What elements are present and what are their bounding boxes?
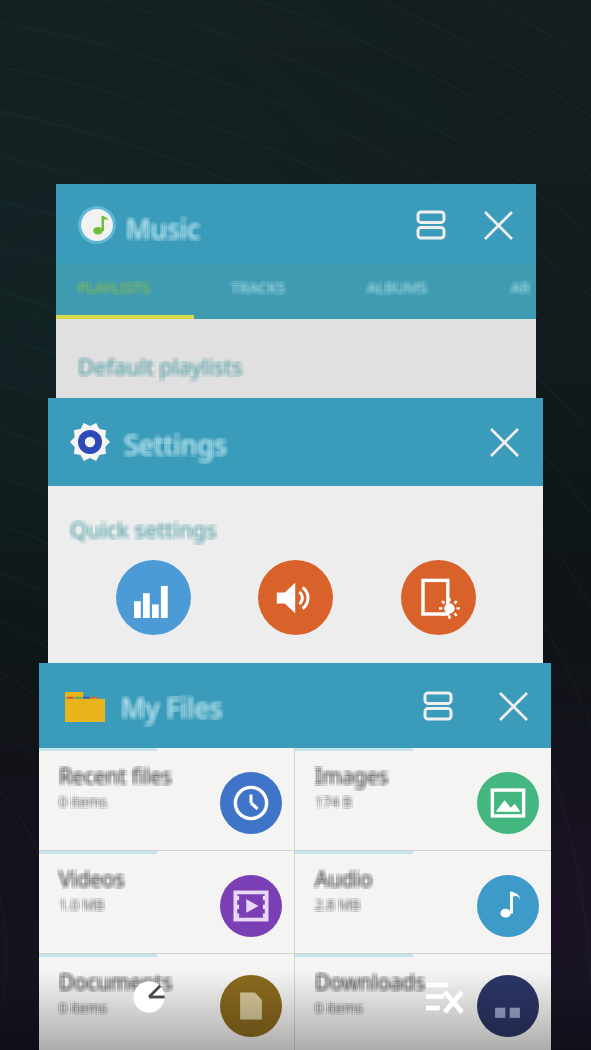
staticText: Downloads	[315, 970, 425, 999]
staticText: 1.0 MB	[59, 895, 105, 914]
staticText: ALBUMS	[367, 279, 428, 299]
staticText: 0 items	[315, 998, 364, 1017]
staticText: 174 B	[317, 792, 354, 811]
staticText: Videos	[61, 863, 127, 892]
staticText: Downloads	[317, 968, 427, 997]
staticText: Default playlists	[78, 353, 243, 383]
staticText: 0 items	[61, 792, 110, 811]
staticText: My Files	[121, 689, 223, 726]
staticText: 2.8 MB	[313, 895, 359, 914]
staticText: Quick settings	[72, 516, 219, 546]
staticText: 174 B	[315, 792, 352, 811]
staticText: 0 items	[313, 1000, 362, 1019]
staticText: Videos	[57, 863, 123, 892]
staticText: Downloads	[317, 966, 427, 995]
staticText: Music	[124, 212, 199, 249]
button[interactable]: Downloads	[295, 954, 551, 1050]
staticText: PLAYLISTS	[76, 277, 148, 297]
staticText: 0 items	[57, 998, 106, 1017]
button[interactable]: Quick setting	[116, 560, 191, 635]
staticText: 1.0 MB	[57, 893, 103, 912]
button[interactable]: Audio	[295, 851, 551, 953]
staticText: Images	[313, 764, 387, 793]
button[interactable]: Videos	[39, 851, 294, 953]
staticText: ALBUMS	[367, 275, 428, 295]
staticText: Documents	[57, 970, 171, 999]
staticText: Audio	[313, 867, 371, 896]
staticText: 2.8 MB	[315, 893, 361, 912]
staticText: Music	[128, 208, 203, 245]
button[interactable]: Images	[295, 748, 551, 850]
staticText: Videos	[61, 867, 127, 896]
staticText: Images	[313, 760, 387, 789]
staticText: Settings	[126, 426, 229, 463]
staticText: PLAYLISTS	[80, 279, 152, 299]
staticText: Documents	[61, 968, 175, 997]
staticText: Settings	[122, 424, 225, 461]
staticText: TRACKS	[233, 275, 287, 295]
staticText: TRACKS	[233, 279, 287, 299]
staticText: Downloads	[313, 966, 423, 995]
staticText: Audio	[317, 867, 375, 896]
staticText: Recent files	[59, 762, 172, 791]
staticText: 0 items	[317, 998, 366, 1017]
button[interactable]: Close Settings	[485, 423, 523, 461]
button[interactable]: Close all	[411, 964, 477, 1030]
staticText: 174 B	[313, 794, 350, 813]
button[interactable]: Quick setting	[258, 560, 333, 635]
staticText: PLAYLISTS	[76, 279, 148, 299]
staticText: 0 items	[313, 998, 362, 1017]
button[interactable]: Recent files	[39, 748, 294, 850]
staticText: AR	[513, 275, 532, 295]
staticText: Audio	[315, 863, 373, 892]
staticText: Images	[317, 760, 391, 789]
staticText: Recent files	[61, 762, 174, 791]
staticText: Recent files	[59, 760, 172, 789]
staticText: 0 items	[59, 998, 108, 1017]
staticText: 2.8 MB	[315, 897, 361, 916]
staticText: Quick settings	[68, 516, 215, 546]
staticText: Documents	[59, 966, 173, 995]
staticText: 2.8 MB	[313, 893, 359, 912]
staticText: Documents	[61, 970, 175, 999]
button[interactable]: Music	[56, 184, 536, 264]
staticText: Images	[315, 764, 389, 793]
staticText: ALBUMS	[365, 275, 426, 295]
staticText: Settings	[126, 424, 229, 461]
staticText: My Files	[119, 687, 221, 724]
button[interactable]: Split screen	[419, 687, 457, 725]
staticText: Downloads	[317, 970, 427, 999]
button[interactable]: Split screen	[412, 206, 450, 244]
staticText: 0 items	[59, 1000, 108, 1019]
staticText: Settings	[124, 426, 227, 463]
staticText: 2.8 MB	[317, 897, 363, 916]
staticText: ALBUMS	[367, 277, 428, 297]
staticText: Audio	[315, 867, 373, 896]
staticText: Quick settings	[70, 514, 217, 544]
staticText: ALBUMS	[369, 275, 430, 295]
staticText: 0 items	[315, 1000, 364, 1019]
staticText: Recent files	[57, 764, 170, 793]
staticText: Recent files	[57, 760, 170, 789]
staticText: Quick settings	[68, 512, 215, 542]
staticText: 174 B	[313, 790, 350, 809]
staticText: PLAYLISTS	[78, 277, 150, 297]
staticText: 174 B	[317, 790, 354, 809]
staticText: Settings	[122, 426, 225, 463]
staticText: 0 items	[61, 998, 110, 1017]
staticText: 0 items	[315, 996, 364, 1015]
staticText: Settings	[122, 428, 225, 465]
button[interactable]: My Files	[39, 663, 551, 748]
staticText: My Files	[123, 687, 225, 724]
button[interactable]: Settings	[48, 398, 543, 486]
staticText: TRACKS	[231, 275, 285, 295]
staticText: Images	[317, 764, 391, 793]
staticText: Videos	[57, 867, 123, 896]
staticText: Quick settings	[70, 512, 217, 542]
button[interactable]: Quick setting	[401, 560, 476, 635]
button[interactable]: Close Music	[479, 206, 517, 244]
button[interactable]: Close My Files	[494, 687, 532, 725]
button[interactable]: Task manager	[116, 964, 182, 1030]
staticText: Music	[124, 208, 199, 245]
button[interactable]: Documents	[39, 954, 294, 1050]
